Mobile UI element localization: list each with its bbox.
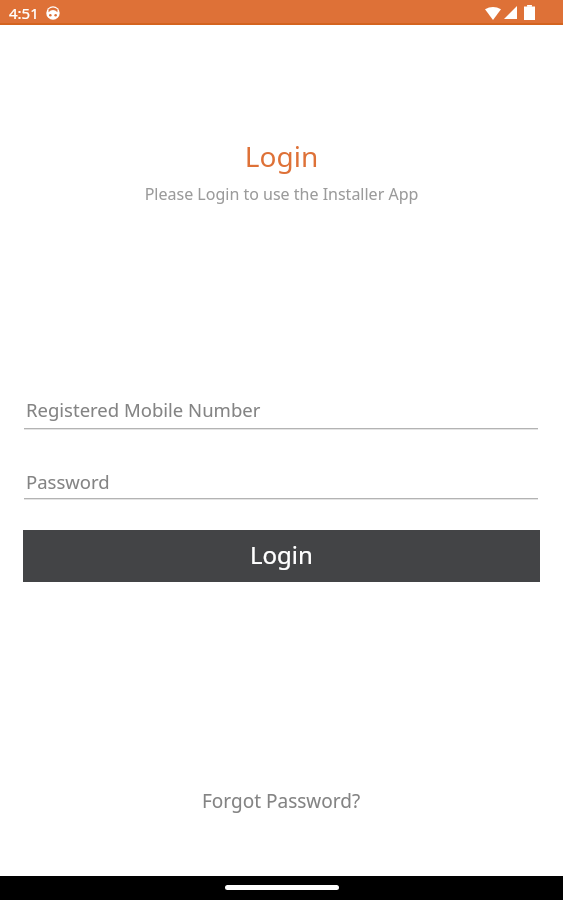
- other: Battery: [524, 5, 535, 20]
- button[interactable]: Password: [24, 469, 538, 509]
- button[interactable]: Registered Mobile Number: [24, 397, 538, 437]
- staticText: Please Login to use the Installer App: [0, 183, 563, 205]
- other: Mobile signal: [504, 6, 517, 19]
- other: Notification status: [46, 6, 60, 20]
- button[interactable]: Login: [23, 530, 540, 582]
- other: Wi-Fi: [485, 6, 501, 20]
- staticText: Login: [0, 137, 563, 175]
- button[interactable]: Home: [225, 885, 339, 890]
- staticText: Forgot Password?: [202, 788, 361, 814]
- staticText: Login: [250, 538, 313, 571]
- staticText: Password: [26, 469, 110, 494]
- staticText: 4:51: [9, 3, 39, 23]
- staticText: Registered Mobile Number: [26, 397, 261, 422]
- button[interactable]: Forgot Password?: [186, 776, 377, 826]
